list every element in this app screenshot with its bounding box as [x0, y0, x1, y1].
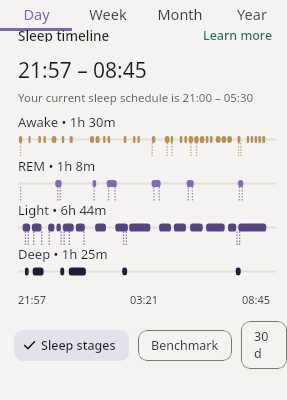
staticText: Light • 6h 44m: [18, 201, 107, 219]
button[interactable]: Sleep stages: [14, 330, 129, 361]
staticText: REM • 1h 8m: [18, 157, 96, 175]
staticText: Sleep timeline: [18, 27, 110, 42]
staticText: Day: [23, 4, 50, 24]
staticText: Month: [157, 4, 203, 24]
staticText: Learn more: [203, 27, 273, 42]
staticText: 08:45: [242, 292, 271, 307]
staticText: Awake • 1h 30m: [18, 113, 116, 131]
staticText: Year: [237, 4, 267, 24]
staticText: 30 d: [254, 328, 274, 362]
button[interactable]: Year: [216, 0, 287, 28]
button[interactable]: Month: [144, 0, 216, 28]
staticText: Week: [89, 4, 127, 24]
button[interactable]: Learn more: [203, 31, 273, 46]
staticText: Your current sleep schedule is 21:00 – 0…: [18, 90, 254, 106]
staticText: 21:57 – 08:45: [18, 56, 147, 85]
button[interactable]: Benchmark: [138, 330, 232, 361]
staticText: Sleep stages: [41, 337, 116, 354]
staticText: Benchmark: [151, 337, 219, 354]
staticText: 21:57: [18, 292, 47, 307]
staticText: Deep • 1h 25m: [18, 245, 108, 263]
button[interactable]: Day: [0, 0, 72, 28]
staticText: 03:21: [130, 292, 159, 307]
button[interactable]: 30 d: [241, 321, 287, 369]
button[interactable]: Week: [72, 0, 144, 28]
